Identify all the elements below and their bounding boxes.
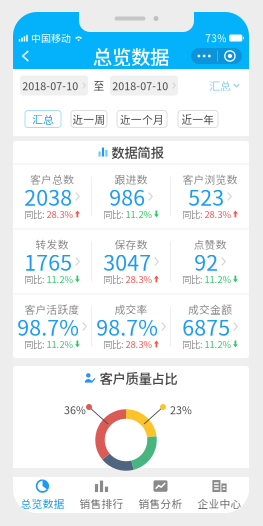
staticText: 11.2%: [125, 207, 152, 221]
staticText: 11.2%: [46, 337, 73, 351]
button[interactable]: 保存数: [92, 229, 170, 293]
button[interactable]: 汇总: [25, 110, 61, 127]
button[interactable]: 客户总数: [13, 164, 91, 228]
button[interactable]: More: [191, 48, 242, 64]
button[interactable]: 成交率: [92, 294, 170, 358]
staticText: 至: [93, 78, 104, 93]
button[interactable]: 客户浏览数: [171, 164, 249, 228]
staticText: 98.7%: [17, 311, 79, 342]
staticText: 2018-07-10: [112, 78, 168, 93]
staticText: 3047: [103, 246, 151, 277]
staticText: 28.3%: [125, 272, 152, 286]
button[interactable]: 点赞数: [171, 229, 249, 293]
staticText: 11.2%: [204, 272, 231, 286]
button[interactable]: 销售分析: [131, 477, 190, 513]
staticText: 客户总数: [30, 171, 74, 187]
staticText: 保存数: [114, 236, 147, 252]
button[interactable]: 2018-07-10: [110, 75, 178, 95]
staticText: 同比:: [24, 337, 45, 351]
staticText: 同比:: [182, 207, 203, 221]
button[interactable]: 成交金额: [171, 294, 249, 358]
button[interactable]: Back: [16, 45, 35, 67]
staticText: 客户活跃度: [24, 301, 79, 317]
staticText: 跟进数: [114, 171, 147, 187]
button[interactable]: 客户活跃度: [13, 294, 91, 358]
staticText: 数据简报: [111, 142, 163, 162]
button[interactable]: 2018-07-10: [20, 75, 88, 95]
staticText: 客户质量占比: [99, 368, 177, 388]
staticText: 11.2%: [204, 337, 231, 351]
staticText: 92: [194, 246, 218, 277]
staticText: 1765: [24, 246, 72, 277]
button[interactable]: 总览数据: [13, 477, 72, 513]
staticText: 同比:: [182, 272, 203, 286]
button[interactable]: 汇总: [209, 77, 240, 94]
staticText: 汇总: [209, 77, 231, 94]
staticText: 11.2%: [46, 272, 73, 286]
button[interactable]: 近一周: [71, 110, 107, 127]
staticText: 同比:: [182, 337, 203, 351]
staticText: 73%: [205, 31, 226, 45]
staticText: 2018-07-10: [22, 78, 78, 93]
staticText: 986: [109, 181, 145, 212]
staticText: 成交率: [114, 301, 147, 317]
staticText: 近一年: [181, 111, 214, 127]
staticText: 同比:: [24, 272, 45, 286]
staticText: 客户浏览数: [182, 171, 237, 187]
staticText: 同比:: [103, 207, 124, 221]
staticText: 销售排行: [79, 496, 123, 511]
staticText: 成交金额: [188, 301, 232, 317]
button[interactable]: 销售排行: [72, 477, 131, 513]
staticText: 28.3%: [204, 207, 231, 221]
staticText: 汇总: [32, 111, 54, 127]
staticText: 同比:: [103, 272, 124, 286]
staticText: 523: [188, 181, 224, 212]
staticText: 点赞数: [193, 236, 226, 252]
staticText: 2038: [24, 181, 72, 212]
staticText: 近一周: [72, 111, 105, 127]
button[interactable]: 近一个月: [117, 110, 167, 127]
staticText: 销售分析: [138, 496, 182, 511]
staticText: 28.3%: [125, 337, 152, 351]
staticText: 总览数据: [93, 42, 169, 70]
staticText: 23%: [170, 402, 192, 417]
button[interactable]: 跟进数: [92, 164, 170, 228]
staticText: 98.7%: [96, 311, 158, 342]
button[interactable]: 转发数: [13, 229, 91, 293]
staticText: 企业中心: [197, 496, 241, 511]
staticText: 总览数据: [20, 496, 64, 511]
button[interactable]: 企业中心: [190, 477, 249, 513]
staticText: 同比:: [24, 207, 45, 221]
staticText: 转发数: [35, 236, 68, 252]
button[interactable]: 近一年: [178, 110, 218, 127]
staticText: 同比:: [103, 337, 124, 351]
staticText: 近一个月: [120, 111, 164, 127]
staticText: 中国移动: [31, 31, 71, 45]
staticText: 28.3%: [46, 207, 73, 221]
staticText: 6875: [182, 311, 230, 342]
staticText: 36%: [64, 402, 86, 417]
